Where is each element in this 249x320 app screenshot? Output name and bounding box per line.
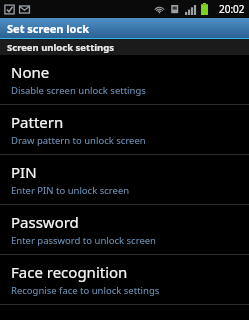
staticText: Enter PIN to unlock screen <box>11 184 130 197</box>
staticText: Pattern <box>11 112 64 132</box>
staticText: Face recognition <box>11 262 128 282</box>
staticText: None <box>11 62 50 82</box>
staticText: 20:02 <box>219 2 245 16</box>
staticText: PIN <box>11 162 37 182</box>
staticText: Draw pattern to unlock screen <box>11 134 146 147</box>
staticText: Disable screen unlock settings <box>11 84 146 97</box>
staticText: Enter password to unlock screen <box>11 234 156 247</box>
button[interactable]: Face recognition <box>0 255 249 304</box>
button[interactable]: None <box>0 55 249 104</box>
button[interactable]: PIN <box>0 155 249 204</box>
button[interactable]: Password <box>0 205 249 254</box>
button[interactable]: Pattern <box>0 105 249 154</box>
staticText: Password <box>11 212 79 232</box>
staticText: Set screen lock <box>7 21 89 36</box>
staticText: Recognise face to unlock settings <box>11 284 160 297</box>
staticText: Screen unlock settings <box>7 41 115 54</box>
